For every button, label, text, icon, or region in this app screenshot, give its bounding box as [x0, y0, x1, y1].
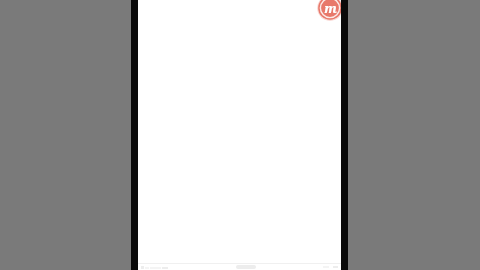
button[interactable]: App logo [317, 0, 343, 21]
staticText: m [324, 0, 337, 17]
button[interactable]: Navigation item [141, 266, 168, 269]
button[interactable]: More options [323, 266, 338, 268]
